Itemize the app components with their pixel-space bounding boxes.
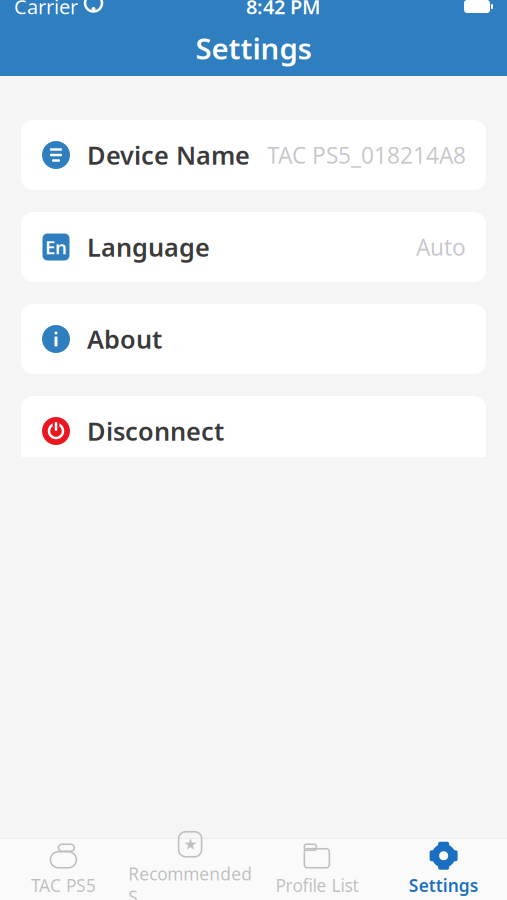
staticText: Carrier — [14, 0, 78, 20]
staticText: Settings — [409, 874, 479, 897]
staticText: 8:42 PM — [246, 0, 321, 20]
staticText: TAC PS5_018214A8 — [267, 140, 466, 170]
staticText: TAC PS5 — [31, 874, 96, 897]
button[interactable]: Device Name — [21, 120, 486, 190]
button[interactable]: En — [21, 212, 486, 282]
staticText: Device Name — [87, 138, 250, 172]
staticText: About — [87, 322, 162, 356]
button[interactable]: ★ — [127, 839, 254, 900]
staticText: ★ — [183, 835, 197, 853]
staticText: Language — [87, 230, 210, 264]
button[interactable]: Disconnect — [21, 396, 486, 466]
staticText: Auto — [416, 232, 466, 262]
button[interactable]: About — [21, 304, 486, 374]
staticText: Profile List — [275, 874, 358, 897]
staticText: En — [45, 235, 67, 259]
staticText: Settings — [195, 28, 311, 67]
staticText: Recommended S... — [128, 862, 252, 900]
button[interactable]: TAC PS5 — [0, 839, 127, 900]
button[interactable]: Settings — [380, 839, 507, 900]
button[interactable]: Profile List — [253, 839, 380, 900]
staticText: Disconnect — [87, 414, 224, 448]
